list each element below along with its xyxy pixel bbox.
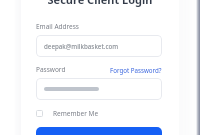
button[interactable]: Forgot Password?	[110, 66, 162, 74]
button[interactable]: Email address input	[36, 35, 162, 57]
staticText: Secure Client Login	[21, 0, 179, 7]
button[interactable]: Remember Me	[36, 109, 99, 118]
staticText: Email Address	[36, 22, 79, 31]
button[interactable]: Password input	[36, 78, 162, 100]
staticText: Remember Me	[53, 109, 99, 118]
staticText: Password	[36, 65, 66, 74]
button[interactable]: Login	[36, 127, 162, 135]
staticText: Forgot Password?	[110, 66, 162, 74]
staticText: deepak@milkbasket.com	[44, 42, 119, 50]
